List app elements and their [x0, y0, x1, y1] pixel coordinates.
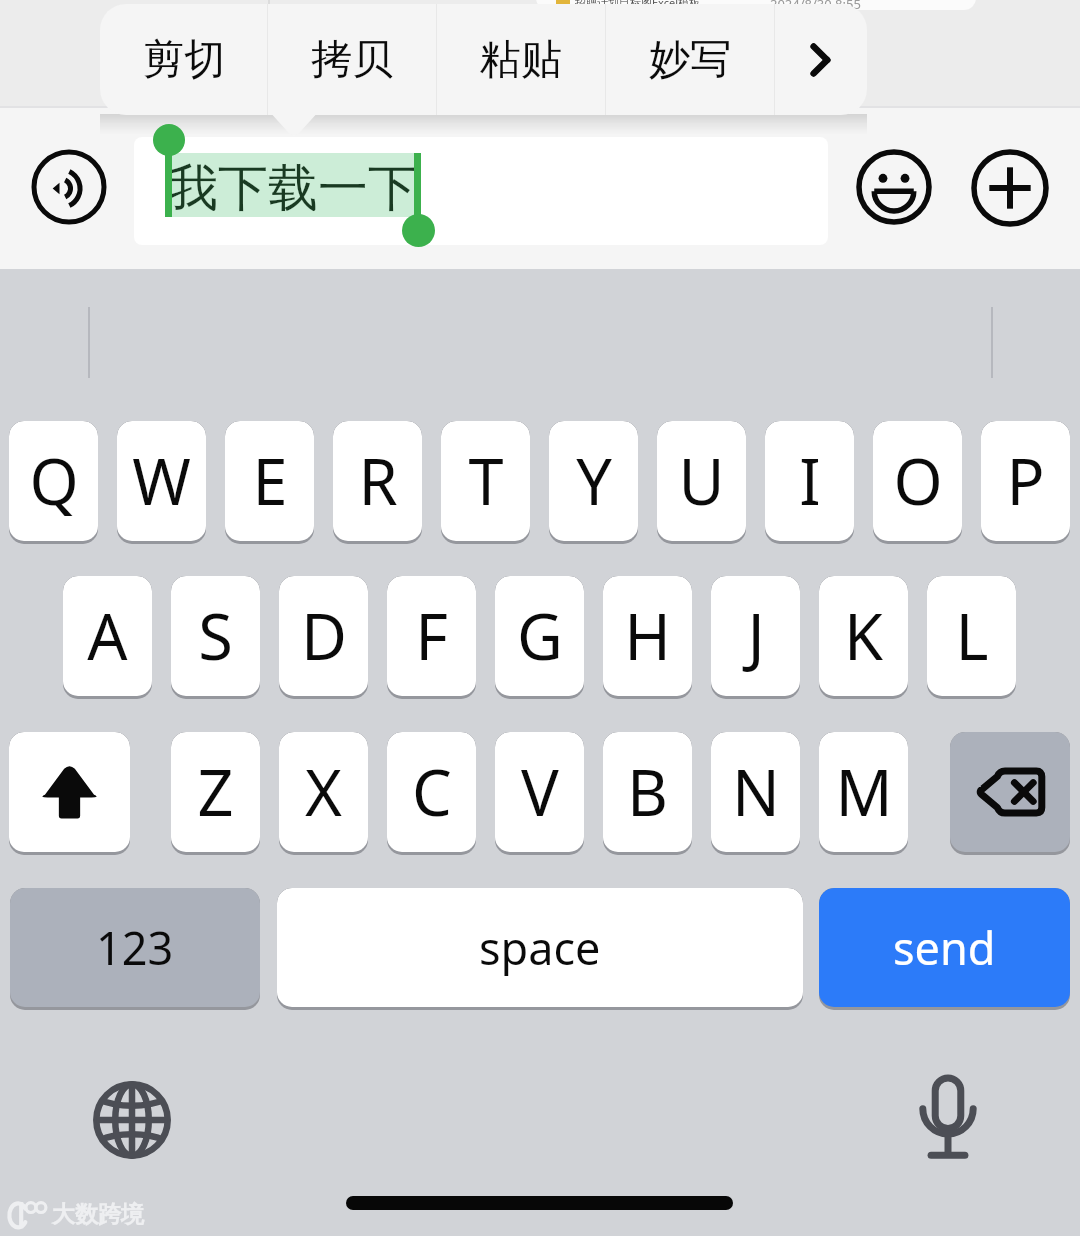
staticText: M [835, 749, 893, 835]
button[interactable]: T [441, 421, 530, 544]
staticText: 2024/8/30 8:55 [770, 0, 861, 13]
staticText: W [132, 438, 191, 524]
staticText: V [521, 749, 559, 835]
button[interactable]: V [495, 732, 584, 855]
staticText: Y [576, 438, 612, 524]
staticText: N [732, 749, 780, 835]
staticText: 大数跨境 [52, 1200, 144, 1229]
staticText: D [301, 593, 347, 679]
button[interactable]: More [971, 149, 1049, 227]
button[interactable]: B [603, 732, 692, 855]
button[interactable]: N [711, 732, 800, 855]
button[interactable] [168, 153, 418, 217]
staticText: T [468, 438, 504, 524]
staticText: C [412, 749, 452, 835]
staticText: P [1006, 438, 1045, 524]
button[interactable]: J [711, 576, 800, 699]
staticText: B [627, 749, 668, 835]
button[interactable]: U [657, 421, 746, 544]
staticText: 123 [96, 917, 174, 978]
staticText: 剪切 [143, 34, 225, 86]
staticText: U [678, 438, 725, 524]
button[interactable]: Backspace [950, 732, 1070, 855]
button[interactable]: Z [171, 732, 260, 855]
staticText: send [893, 917, 996, 978]
button[interactable]: More actions [775, 4, 864, 115]
button[interactable]: K [819, 576, 908, 699]
button[interactable]: F [387, 576, 476, 699]
button[interactable]: L [927, 576, 1016, 699]
staticText: 妙写 [649, 34, 731, 86]
staticText: E [252, 438, 288, 524]
button[interactable]: R [333, 421, 422, 544]
staticText: O [893, 438, 943, 524]
button[interactable]: D [279, 576, 368, 699]
button[interactable]: A [63, 576, 152, 699]
button[interactable]: O [873, 421, 962, 544]
staticText: F [415, 593, 448, 679]
staticText: J [747, 593, 765, 679]
staticText: Z [197, 749, 234, 835]
button[interactable]: Emoji [856, 149, 932, 225]
staticText: G [517, 593, 563, 679]
button[interactable]: I [765, 421, 854, 544]
button[interactable]: C [387, 732, 476, 855]
staticText: 拷贝 [311, 34, 393, 86]
staticText: R [358, 438, 398, 524]
button[interactable]: G [495, 576, 584, 699]
button[interactable]: 拷贝 [268, 4, 436, 115]
button[interactable]: S [171, 576, 260, 699]
button[interactable]: H [603, 576, 692, 699]
button[interactable]: Dictation [912, 1076, 984, 1158]
button[interactable]: M [819, 732, 908, 855]
staticText: space [479, 917, 601, 978]
staticText: Q [29, 438, 79, 524]
button[interactable]: 粘贴 [437, 4, 605, 115]
staticText: A [87, 593, 128, 679]
staticText: 我下载一下 [168, 157, 418, 220]
staticText: H [624, 593, 671, 679]
staticText: S [198, 593, 233, 679]
staticText: X [305, 749, 342, 835]
button[interactable]: E [225, 421, 314, 544]
button[interactable]: 123 [10, 888, 260, 1010]
button[interactable]: W [117, 421, 206, 544]
button[interactable]: send [819, 888, 1070, 1010]
button[interactable]: Voice input [31, 149, 107, 225]
staticText: L [955, 593, 989, 679]
staticText: 粘贴 [480, 34, 562, 86]
staticText: 招聘计划目标图Excel模板 [575, 0, 701, 10]
button[interactable]: 妙写 [606, 4, 774, 115]
button[interactable]: X [279, 732, 368, 855]
staticText: K [844, 593, 883, 679]
button[interactable]: P [981, 421, 1070, 544]
button[interactable]: Q [9, 421, 98, 544]
button[interactable]: Change keyboard [94, 1082, 170, 1158]
button[interactable]: Shift [9, 732, 130, 855]
button[interactable] [134, 137, 828, 245]
staticText: I [799, 438, 821, 524]
button[interactable]: Y [549, 421, 638, 544]
button[interactable]: 剪切 [100, 4, 267, 115]
button[interactable]: space [277, 888, 803, 1010]
